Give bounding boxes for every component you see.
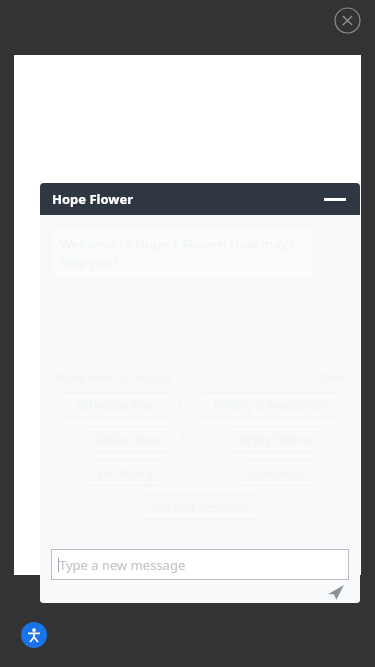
button[interactable]: Accessibility [21, 622, 47, 648]
button[interactable]: Type a new message [51, 549, 349, 580]
button[interactable]: Minimize [322, 189, 348, 209]
staticText: Hope Flower [52, 190, 134, 208]
button[interactable]: Hope Flower [40, 183, 360, 215]
button[interactable]: Close [334, 7, 361, 34]
staticText: Type a new message [59, 556, 186, 574]
button[interactable]: Send [326, 582, 346, 602]
